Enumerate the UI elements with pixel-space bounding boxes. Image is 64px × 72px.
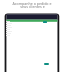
button[interactable]: Add: [44, 63, 49, 65]
button[interactable]: App bar: [5, 12, 48, 16]
button[interactable]: Filter: [43, 21, 47, 23]
staticText: seus clientes e: [20, 4, 45, 9]
staticText: Acompanhe o pedido e: [12, 1, 52, 6]
